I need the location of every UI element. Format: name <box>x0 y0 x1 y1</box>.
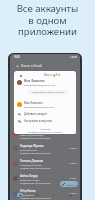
button[interactable]: Настройки аккаунтов <box>17 119 73 123</box>
staticText: 12 мая <box>69 132 77 135</box>
staticText: e <box>58 72 61 78</box>
staticText: 12 мая <box>69 192 77 195</box>
staticText: Городской лагерь <box>20 163 42 166</box>
staticText: Содержание письма здесь <box>20 166 51 169</box>
staticText: Содержание письма здесь <box>20 196 51 199</box>
staticText: Все аккаунты в одном приложении <box>0 2 95 37</box>
staticText: Сергей Орлов <box>20 129 40 133</box>
staticText: Заказ подтверждён <box>20 133 44 136</box>
button[interactable]: Почта <box>13 189 27 200</box>
staticText: Алёна Лидер <box>20 174 38 178</box>
staticText: имя.фамилия@gmail.com <box>24 105 54 108</box>
staticText: l <box>56 72 58 78</box>
staticText: Имя Фамилия <box>24 101 43 105</box>
staticText: Содержание письма здесь <box>20 181 51 184</box>
staticText: Написать <box>66 183 77 186</box>
staticText: Добавить аккаунт <box>24 112 48 116</box>
staticText: Продолжить аккаунт Google <box>32 91 64 94</box>
staticText: конфиденциальности • Условия <box>28 131 62 134</box>
button[interactable]: Алёна Лидер <box>13 171 77 186</box>
staticText: Важный отчёт <box>20 148 38 151</box>
staticText: Татьяна Дьякова <box>20 159 44 163</box>
button[interactable]: Татьяна Дьякова <box>13 156 77 171</box>
button[interactable]: Чат <box>30 189 44 200</box>
button[interactable]: Имя Фамилия <box>17 101 73 108</box>
staticText: имя.фамилия@gmail.com <box>24 83 56 86</box>
staticText: Поиск в Gmail <box>21 64 43 68</box>
button[interactable]: Close <box>18 73 23 78</box>
button[interactable]: Продолжить аккаунт Google <box>28 90 68 95</box>
staticText: Имя Фамилия <box>24 79 45 83</box>
staticText: G <box>44 72 47 78</box>
staticText: 12 мая <box>69 162 77 165</box>
staticText: Содержание письма здесь <box>20 136 51 139</box>
staticText: Содержание письма здесь <box>20 151 51 154</box>
staticText: o <box>47 72 50 78</box>
button[interactable]: Сергей Орлов <box>13 126 77 141</box>
button[interactable]: Имя Фамилия <box>17 79 73 86</box>
staticText: 9:30 <box>14 55 20 59</box>
staticText: o <box>50 72 53 78</box>
staticText: Настройки аккаунтов <box>24 119 52 123</box>
button[interactable]: Пётр Котов <box>13 186 77 200</box>
staticText: Пётр Котов <box>20 189 36 193</box>
staticText: Документы <box>20 193 34 196</box>
button[interactable]: Надежда Жукова <box>13 141 77 156</box>
button[interactable]: Комнаты <box>46 189 60 200</box>
staticText: Надежда Жукова <box>20 144 44 148</box>
staticText: 12 мая <box>69 147 77 150</box>
button[interactable]: Meet <box>63 189 77 200</box>
staticText: g <box>53 72 56 78</box>
staticText: Политика <box>40 128 51 131</box>
staticText: Встреча в среду <box>20 178 40 181</box>
button[interactable]: Добавить аккаунт <box>17 112 73 116</box>
staticText: 12 мая <box>69 177 77 180</box>
button[interactable]: Написать <box>60 181 78 187</box>
